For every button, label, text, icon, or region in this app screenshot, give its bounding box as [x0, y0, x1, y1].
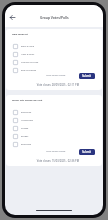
staticText: Submit	[82, 150, 92, 154]
staticText: Bruges	[21, 135, 29, 138]
staticText: Group Votes/Polls	[40, 15, 69, 19]
button[interactable]: Navy & Silver	[13, 50, 102, 58]
staticText: Bratislava	[21, 143, 32, 146]
staticText: Blue & Orange	[21, 69, 37, 72]
button[interactable]: Prague	[13, 124, 102, 132]
button[interactable]: Barcelona	[13, 108, 102, 116]
staticText: Amsterdam	[21, 119, 33, 122]
staticText: New Team Kit	[12, 33, 28, 36]
staticText: Submit	[82, 74, 92, 78]
button[interactable]: Crimson & White	[13, 58, 102, 66]
button[interactable]: Bratislava	[13, 140, 102, 148]
button[interactable]: Bruges	[13, 132, 102, 140]
button[interactable]: Blue & Orange	[13, 66, 102, 74]
button[interactable]: Black & Gold	[13, 42, 102, 50]
staticText: Multi-Option Voting	[46, 150, 66, 153]
staticText: Prague	[21, 127, 29, 130]
button[interactable]: Submit	[79, 73, 95, 79]
button[interactable]: Amsterdam	[13, 116, 102, 124]
staticText: Crimson & White	[21, 61, 39, 64]
staticText: Vote closes: 15/03/2025 - 02:36 PM	[6, 159, 79, 163]
staticText: Barcelona	[21, 111, 32, 114]
staticText: Multi-Option Voting	[46, 74, 66, 77]
staticText: Black & Gold	[21, 45, 34, 48]
staticText: Which City Should We Visit	[12, 99, 43, 102]
staticText: Navy & Silver	[21, 53, 35, 56]
button[interactable]: Submit	[79, 149, 95, 155]
staticText: Vote closes: 28/09/2025 - 02:11 PM	[6, 83, 79, 87]
button[interactable]: Back	[7, 12, 18, 23]
